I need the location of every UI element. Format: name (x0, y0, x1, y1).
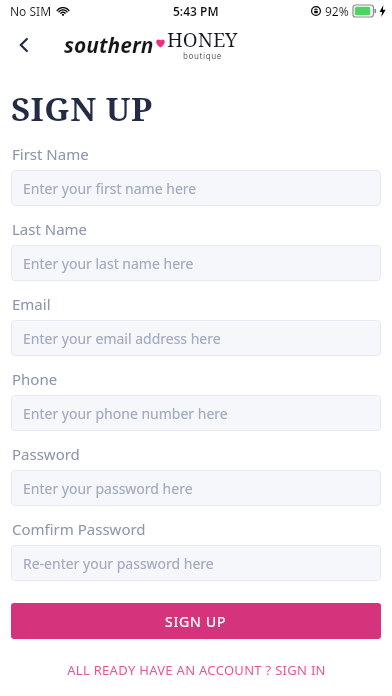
staticText: SIGN UP (11, 86, 153, 131)
button[interactable]: Enter your first name here (11, 170, 381, 206)
staticText: boutique (183, 50, 222, 61)
staticText: Enter your last name here (23, 254, 194, 273)
staticText: SIGN UP (165, 612, 227, 631)
staticText: First Name (12, 144, 89, 164)
staticText: Password (12, 444, 80, 464)
staticText: Enter your first name here (23, 179, 197, 198)
button[interactable]: Enter your password here (11, 470, 381, 506)
button[interactable]: Enter your phone number here (11, 395, 381, 431)
button[interactable]: ALL READY HAVE AN ACCOUNT ? SIGN IN (11, 655, 381, 685)
staticText: ALL READY HAVE AN ACCOUNT ? SIGN IN (67, 661, 326, 679)
staticText: southern (64, 31, 154, 60)
staticText: Email (12, 294, 51, 314)
button[interactable]: Re-enter your password here (11, 545, 381, 581)
staticText: Enter your password here (23, 479, 193, 498)
button[interactable]: Enter your email address here (11, 320, 381, 356)
button[interactable]: SIGN UP (11, 603, 381, 639)
staticText: 5:43 PM (173, 3, 219, 19)
staticText: Comfirm Password (12, 519, 146, 539)
staticText: Re-enter your password here (23, 554, 214, 573)
staticText: Phone (12, 369, 58, 389)
staticText: Last Name (12, 219, 88, 239)
staticText: No SIM (10, 3, 52, 19)
staticText: Enter your email address here (23, 329, 221, 348)
staticText: HONEY (167, 26, 238, 53)
button[interactable]: Enter your last name here (11, 245, 381, 281)
button[interactable]: Back (6, 27, 42, 63)
staticText: 92% (325, 3, 349, 19)
staticText: Enter your phone number here (23, 404, 228, 423)
